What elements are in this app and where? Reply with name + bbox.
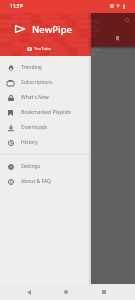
button[interactable]: What's New (0, 90, 91, 105)
button[interactable]: Recents (96, 284, 112, 300)
staticText: Bookmarked Playlists (21, 109, 72, 116)
staticText: What's New (21, 94, 49, 101)
button[interactable]: Back (21, 284, 37, 300)
button[interactable]: Bookmarked playlists tab (112, 33, 122, 43)
button[interactable]: Subscriptions (0, 75, 91, 90)
staticText: Downloads (21, 124, 48, 131)
button[interactable]: YouTube (27, 46, 51, 52)
button[interactable]: Search (121, 14, 133, 26)
staticText: YouTube (34, 46, 51, 52)
staticText: 11:31 (10, 3, 22, 9)
staticText: Trending (21, 64, 42, 71)
button[interactable]: Bookmarked Playlists (0, 105, 91, 120)
staticText: Settings (21, 163, 41, 170)
button[interactable]: Settings (0, 159, 91, 174)
staticText: Subscriptions (21, 79, 53, 86)
button[interactable]: Downloads (0, 120, 91, 135)
button[interactable]: Home (58, 284, 74, 300)
button[interactable]: History (0, 135, 91, 150)
staticText: History (21, 139, 38, 146)
button[interactable]: Trending (0, 60, 91, 75)
staticText: About & FAQ (21, 178, 51, 185)
staticText: NewPipe (32, 23, 73, 36)
button[interactable]: About & FAQ (0, 174, 91, 189)
